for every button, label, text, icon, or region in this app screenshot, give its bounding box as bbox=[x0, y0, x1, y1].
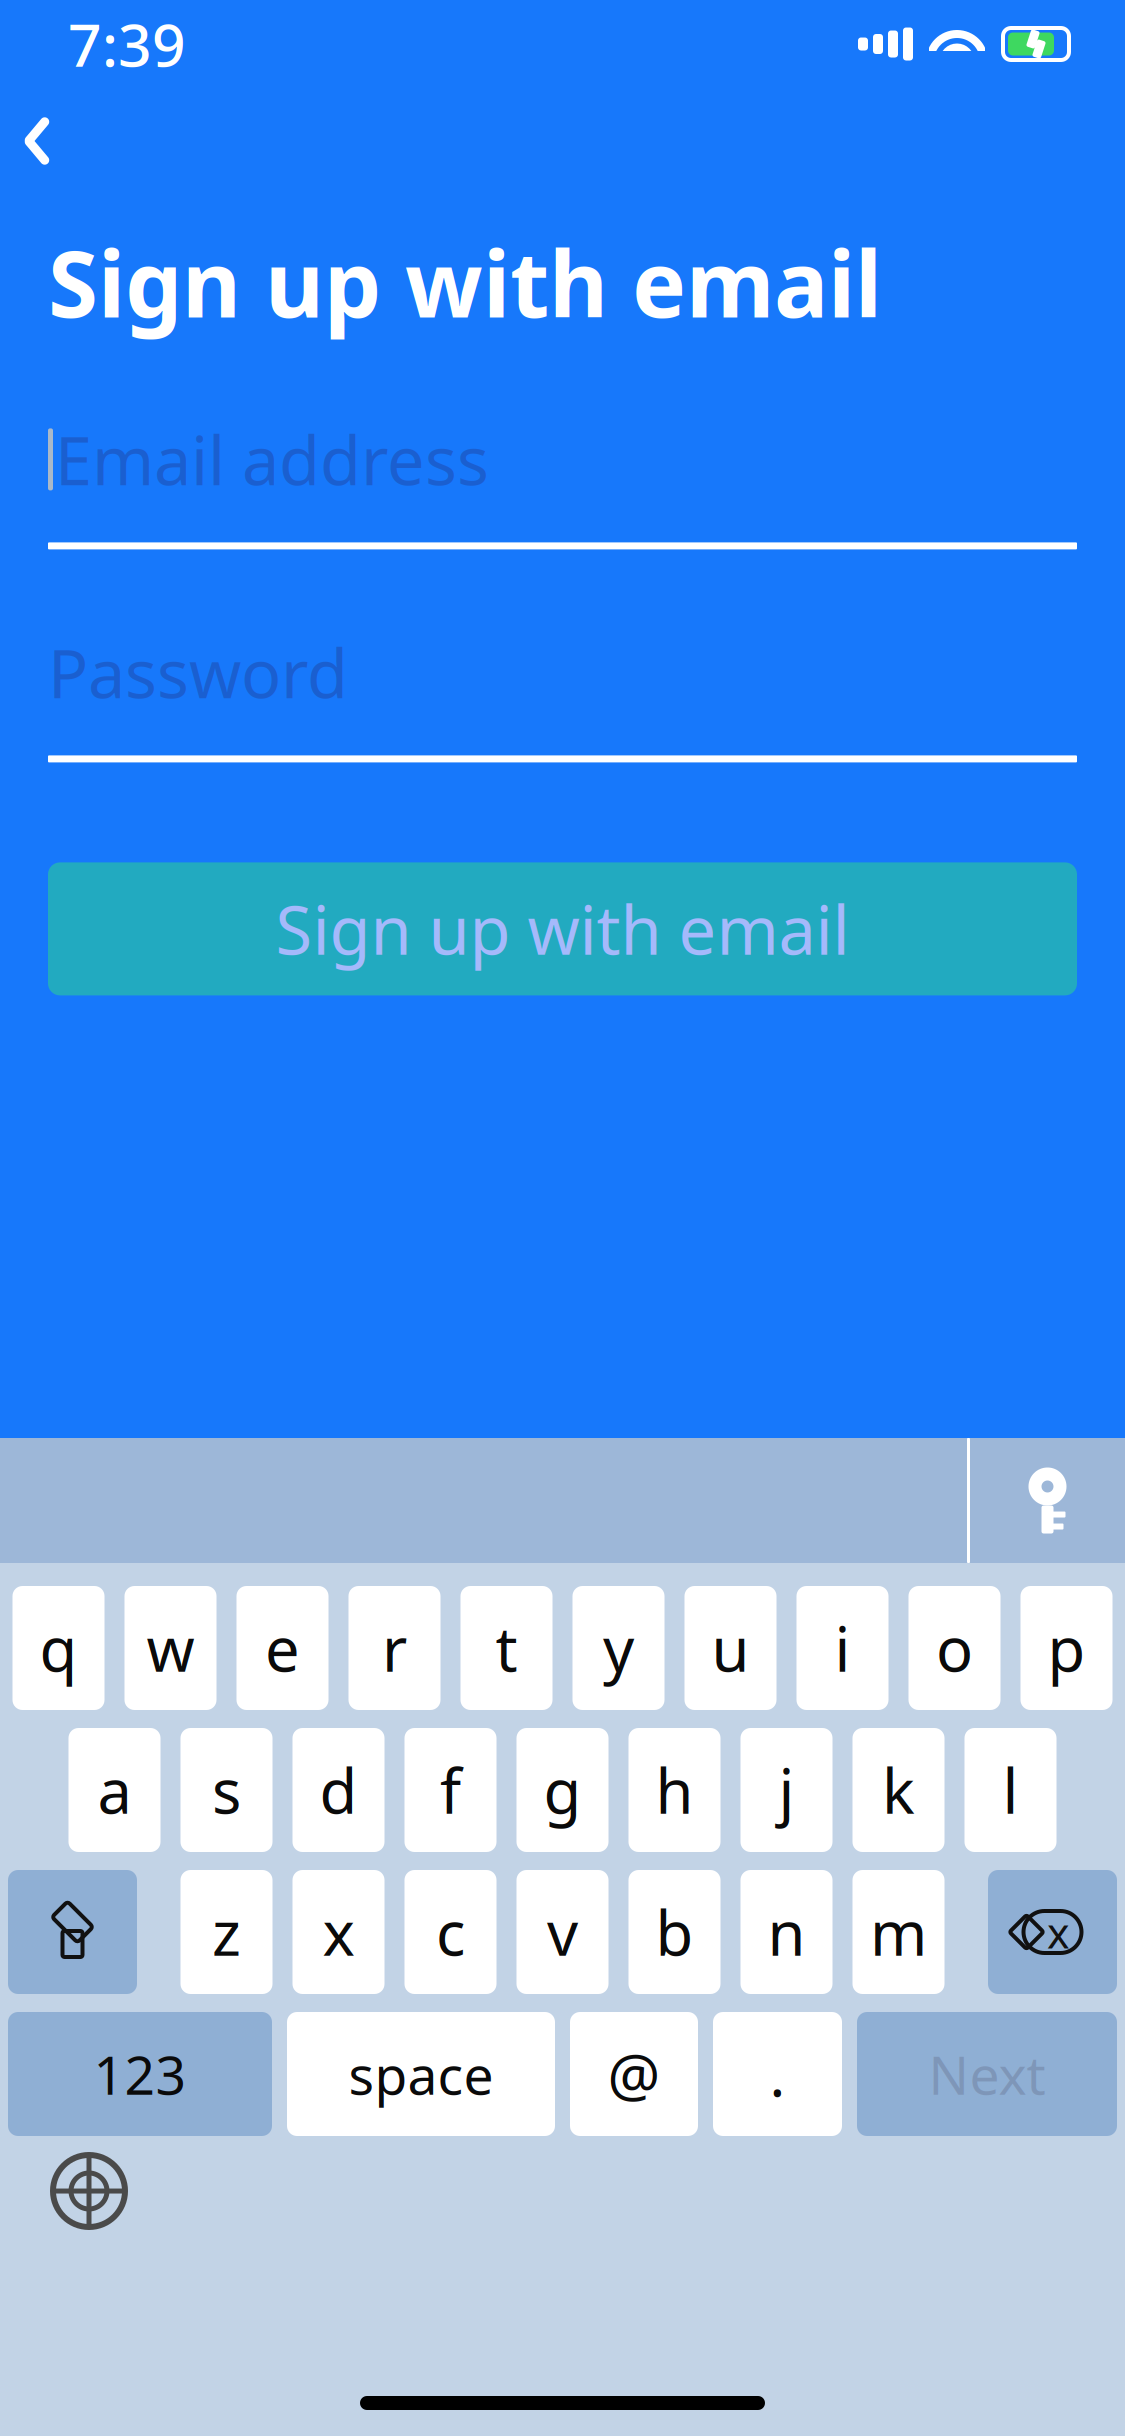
button[interactable]: s bbox=[180, 1728, 272, 1852]
staticText: e bbox=[265, 1607, 300, 1689]
staticText: x bbox=[322, 1891, 354, 1973]
button[interactable]: Password bbox=[48, 637, 1077, 762]
staticText: w bbox=[146, 1607, 194, 1689]
button[interactable]: j bbox=[740, 1728, 832, 1852]
staticText: @ bbox=[607, 2035, 660, 2113]
button[interactable]: h bbox=[628, 1728, 720, 1852]
staticText: s bbox=[212, 1749, 241, 1831]
button[interactable]: @ bbox=[570, 2012, 698, 2136]
staticText: p bbox=[1047, 1607, 1085, 1689]
staticText: o bbox=[936, 1607, 973, 1689]
button[interactable]: Email address bbox=[48, 424, 1077, 549]
button[interactable]: Sign up with email bbox=[48, 862, 1077, 995]
button[interactable]: x bbox=[292, 1870, 384, 1994]
staticText: f bbox=[440, 1749, 461, 1831]
button[interactable]: c bbox=[404, 1870, 496, 1994]
button[interactable]: g bbox=[516, 1728, 608, 1852]
button[interactable]: a bbox=[68, 1728, 160, 1852]
button[interactable]: o bbox=[908, 1586, 1000, 1710]
button[interactable]: Next keyboard bbox=[50, 2152, 128, 2230]
button[interactable]: q bbox=[12, 1586, 104, 1710]
button[interactable]: f bbox=[404, 1728, 496, 1852]
staticText: space bbox=[348, 2039, 493, 2109]
staticText: 123 bbox=[93, 2039, 186, 2109]
staticText: Next bbox=[928, 2039, 1045, 2109]
staticText: Password bbox=[48, 628, 348, 717]
button[interactable]: Shift bbox=[8, 1870, 137, 1994]
staticText: b bbox=[655, 1891, 693, 1973]
staticText: a bbox=[97, 1749, 131, 1831]
button[interactable]: y bbox=[572, 1586, 664, 1710]
button[interactable]: Delete bbox=[988, 1870, 1117, 1994]
staticText: Sign up with email bbox=[275, 885, 849, 973]
button[interactable]: d bbox=[292, 1728, 384, 1852]
button[interactable]: Passwords bbox=[1017, 1465, 1077, 1535]
button[interactable]: Next bbox=[857, 2012, 1117, 2136]
button[interactable]: v bbox=[516, 1870, 608, 1994]
button[interactable]: k bbox=[852, 1728, 944, 1852]
staticText: c bbox=[436, 1891, 465, 1973]
button[interactable]: z bbox=[180, 1870, 272, 1994]
button[interactable]: u bbox=[684, 1586, 776, 1710]
staticText: y bbox=[603, 1607, 634, 1689]
staticText: . bbox=[769, 2035, 785, 2113]
staticText: Email address bbox=[55, 415, 489, 504]
staticText: h bbox=[655, 1749, 693, 1831]
staticText: d bbox=[319, 1749, 357, 1831]
staticText: j bbox=[778, 1749, 794, 1831]
staticText: i bbox=[834, 1607, 850, 1689]
staticText: m bbox=[870, 1891, 927, 1973]
button[interactable]: space bbox=[287, 2012, 555, 2136]
staticText: q bbox=[39, 1607, 77, 1689]
button[interactable]: b bbox=[628, 1870, 720, 1994]
button[interactable]: r bbox=[348, 1586, 440, 1710]
staticText: Sign up with email bbox=[48, 222, 882, 342]
button[interactable]: e bbox=[236, 1586, 328, 1710]
staticText: z bbox=[212, 1891, 241, 1973]
staticText: t bbox=[495, 1607, 517, 1689]
button[interactable]: Back bbox=[0, 108, 76, 174]
button[interactable]: t bbox=[460, 1586, 552, 1710]
staticText: x bbox=[1047, 1904, 1070, 1960]
button[interactable]: m bbox=[852, 1870, 944, 1994]
button[interactable]: l bbox=[964, 1728, 1056, 1852]
staticText: r bbox=[382, 1607, 407, 1689]
staticText: k bbox=[882, 1749, 915, 1831]
button[interactable]: w bbox=[124, 1586, 216, 1710]
button[interactable]: i bbox=[796, 1586, 888, 1710]
staticText: u bbox=[711, 1607, 749, 1689]
staticText: n bbox=[767, 1891, 805, 1973]
staticText: 7:39 bbox=[68, 5, 186, 83]
button[interactable]: n bbox=[740, 1870, 832, 1994]
button[interactable]: 123 bbox=[8, 2012, 272, 2136]
button[interactable]: p bbox=[1020, 1586, 1112, 1710]
button[interactable]: . bbox=[713, 2012, 842, 2136]
staticText: l bbox=[1002, 1749, 1018, 1831]
staticText: v bbox=[547, 1891, 578, 1973]
staticText: g bbox=[543, 1749, 581, 1831]
